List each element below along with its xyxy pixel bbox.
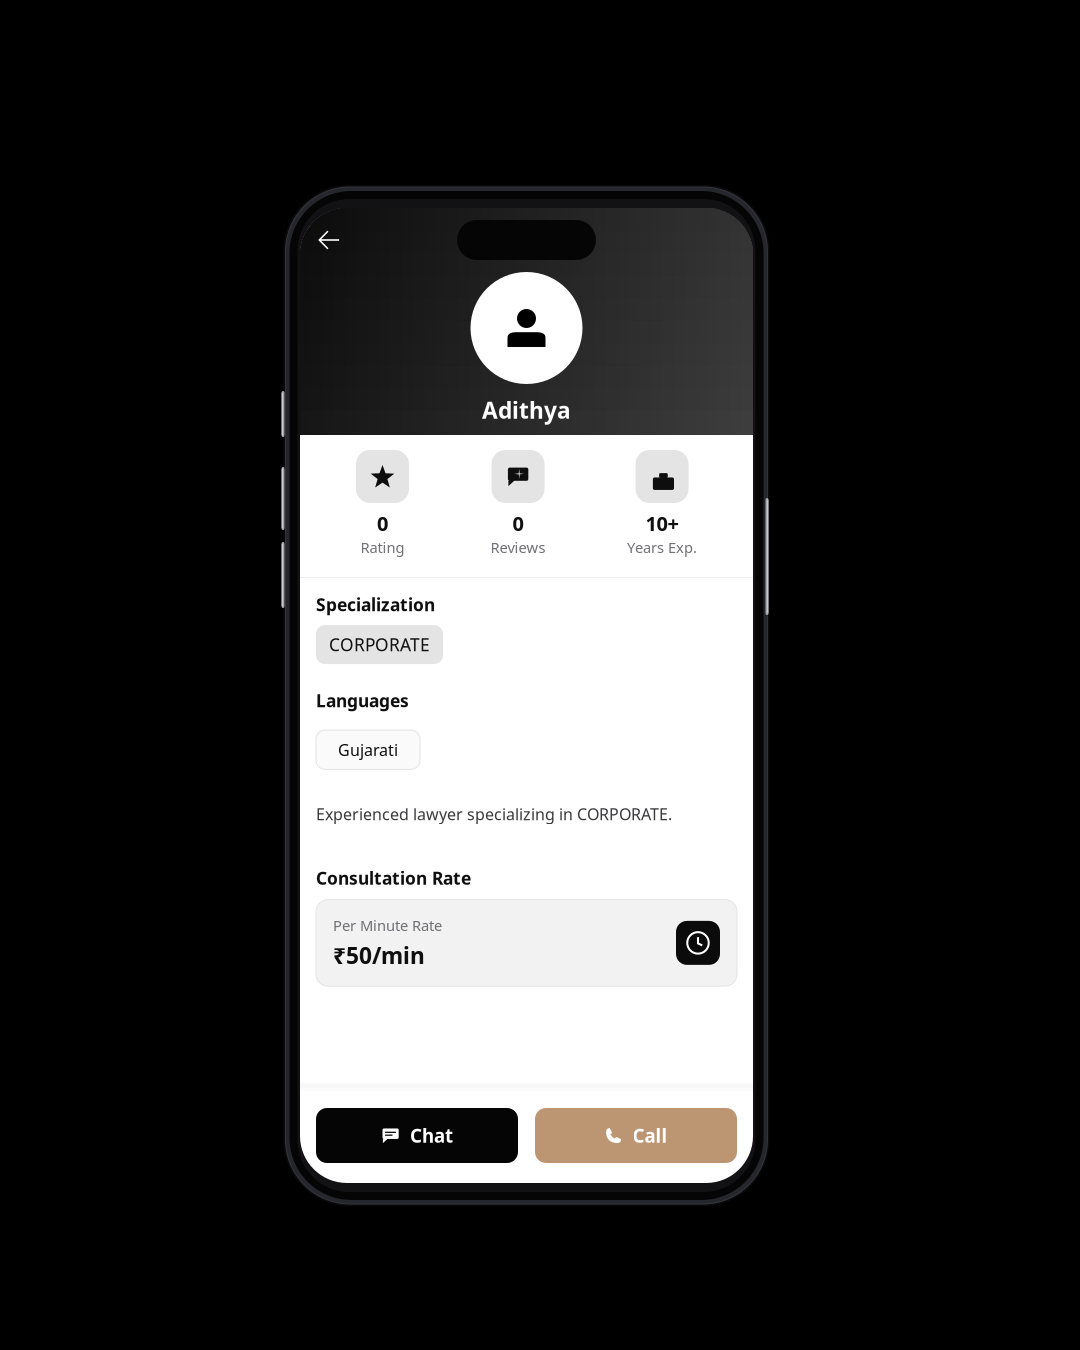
staticText: Specialization (316, 593, 435, 616)
staticText: Adithya (482, 395, 571, 425)
staticText: 0 (377, 510, 388, 537)
staticText: Per Minute Rate (333, 916, 442, 935)
button[interactable]: Call (535, 1108, 737, 1163)
staticText: Languages (316, 689, 409, 712)
staticText: Consultation Rate (316, 867, 471, 890)
staticText: CORPORATE (329, 633, 430, 656)
staticText: Rating (360, 538, 404, 557)
staticText: 0 (512, 510, 523, 537)
staticText: Years Exp. (627, 538, 697, 557)
staticText: 10+ (645, 510, 678, 537)
button[interactable]: Back (309, 222, 349, 258)
staticText: Gujarati (338, 739, 398, 760)
staticText: Experienced lawyer specializing in CORPO… (316, 803, 672, 824)
staticText: Call (632, 1123, 667, 1148)
staticText: Chat (410, 1123, 453, 1148)
button[interactable]: Gujarati (316, 730, 420, 769)
staticText: ₹50/min (333, 940, 425, 970)
staticText: Reviews (490, 538, 545, 557)
button[interactable]: Chat (316, 1108, 518, 1163)
button[interactable]: CORPORATE (316, 625, 443, 664)
